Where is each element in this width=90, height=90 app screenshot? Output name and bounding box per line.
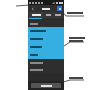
button[interactable]: Back	[30, 6, 35, 11]
button[interactable]	[28, 59, 64, 66]
button[interactable]	[28, 66, 64, 73]
button[interactable]: Select parameters	[57, 6, 62, 11]
button[interactable]	[53, 12, 63, 18]
button[interactable]	[28, 35, 64, 43]
button[interactable]	[28, 20, 64, 27]
button[interactable]	[28, 51, 64, 59]
button[interactable]	[28, 43, 64, 51]
button[interactable]	[31, 83, 61, 88]
button[interactable]	[43, 12, 53, 18]
button[interactable]	[28, 27, 64, 35]
button[interactable]	[29, 12, 43, 18]
